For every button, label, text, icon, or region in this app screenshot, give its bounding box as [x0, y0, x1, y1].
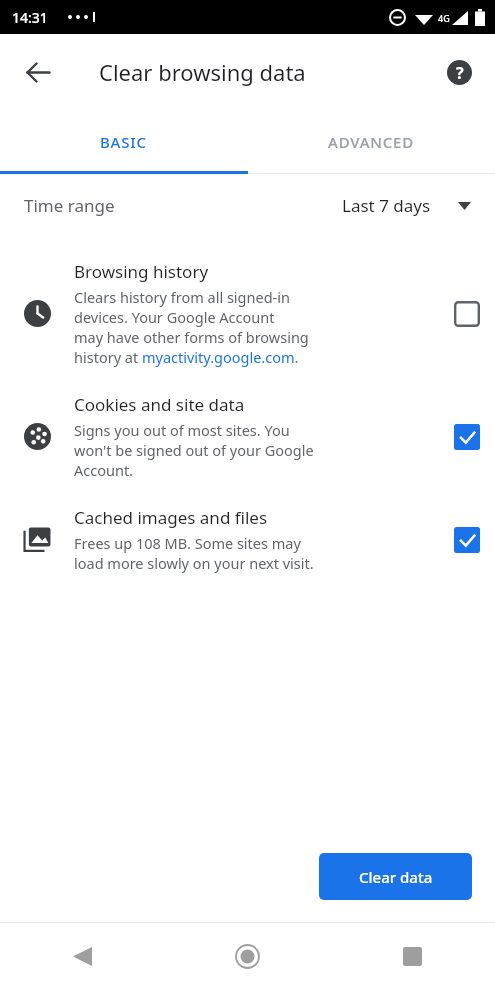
button[interactable]: Recents — [330, 923, 495, 989]
button[interactable]: Clear data — [319, 853, 472, 900]
staticText: devices. Your Google Account — [74, 307, 275, 327]
button[interactable]: Browsing history — [0, 260, 495, 367]
button[interactable]: Help — [437, 50, 481, 94]
staticText: Browsing history — [74, 260, 209, 283]
button[interactable]: Checked — [447, 417, 487, 457]
button[interactable]: Time range — [0, 174, 495, 236]
staticText: Clear browsing data — [99, 57, 306, 87]
staticText: ADVANCED — [328, 132, 414, 152]
staticText: Clears history from all signed-in — [74, 287, 290, 307]
button[interactable]: Back — [0, 923, 165, 989]
staticText: Frees up 108 MB. Some sites may — [74, 533, 301, 553]
staticText: Signs you out of most sites. You — [74, 420, 290, 440]
staticText: Cached images and files — [74, 506, 268, 529]
staticText: Last 7 days — [342, 194, 431, 217]
button[interactable]: BASIC — [0, 110, 247, 174]
staticText: 4G — [438, 12, 450, 24]
button[interactable]: ADVANCED — [247, 110, 495, 174]
button[interactable]: Checked — [447, 520, 487, 560]
staticText: BASIC — [100, 132, 147, 152]
staticText: 14:31 — [12, 8, 48, 27]
staticText: Account. — [74, 460, 134, 480]
staticText: history at myactivity.google.com. — [74, 347, 299, 367]
staticText: Cookies and site data — [74, 393, 245, 416]
button[interactable]: Cookies and site data — [0, 393, 495, 480]
staticText: won't be signed out of your Google — [74, 440, 314, 460]
staticText: ? — [456, 62, 464, 84]
staticText: Time range — [24, 194, 115, 217]
button[interactable]: Home — [165, 923, 330, 989]
button[interactable]: Unchecked — [447, 294, 487, 334]
staticText: Clear data — [359, 867, 433, 887]
button[interactable]: Back — [14, 48, 62, 96]
button[interactable]: Cached images and files — [0, 506, 495, 573]
staticText: may have other forms of browsing — [74, 327, 309, 347]
staticText: load more slowly on your next visit. — [74, 553, 314, 573]
